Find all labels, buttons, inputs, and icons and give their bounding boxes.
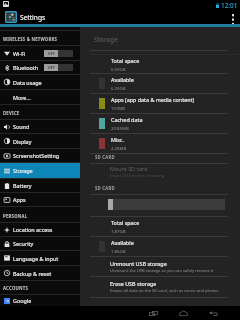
staticText: DEVICE bbox=[3, 110, 20, 116]
staticText: Data usage bbox=[13, 79, 42, 86]
staticText: PERSONAL bbox=[3, 213, 28, 219]
staticText: Battery bbox=[13, 182, 32, 189]
button[interactable]: Total space bbox=[80, 55, 240, 73]
staticText: Available bbox=[111, 76, 134, 83]
staticText: Language & input bbox=[13, 255, 59, 262]
button[interactable]: Total space bbox=[80, 217, 240, 236]
staticText: Total space bbox=[111, 57, 140, 64]
button[interactable]: Wi-Fi bbox=[0, 46, 80, 60]
staticText: 4.28MB bbox=[111, 145, 127, 151]
button[interactable]: Back bbox=[206, 306, 220, 320]
staticText: Insert SD Card for mounting bbox=[110, 173, 165, 179]
button[interactable]: Storage bbox=[0, 163, 80, 178]
staticText: Erases all data on the SD card, such as … bbox=[110, 288, 219, 294]
staticText: 6.59GB bbox=[111, 66, 126, 72]
staticText: Display bbox=[13, 138, 32, 145]
button[interactable]: Mount SD card bbox=[80, 164, 240, 180]
staticText: Erase USB storage bbox=[110, 280, 157, 287]
staticText: 20.85MB bbox=[111, 125, 129, 131]
button[interactable]: Apps bbox=[0, 193, 80, 206]
button[interactable]: Data usage bbox=[0, 75, 80, 89]
button[interactable]: Battery bbox=[0, 179, 80, 192]
button[interactable]: More options bbox=[226, 10, 240, 24]
button[interactable]: Home bbox=[176, 306, 190, 320]
button[interactable]: Misc. bbox=[80, 134, 240, 153]
staticText: Apps bbox=[13, 196, 26, 203]
button[interactable]: Available bbox=[80, 237, 240, 256]
staticText: 101MB bbox=[111, 105, 126, 111]
button[interactable]: OFF bbox=[44, 50, 73, 57]
button[interactable]: Recent apps bbox=[146, 306, 160, 320]
button[interactable]: Security bbox=[0, 237, 80, 250]
staticText: Backup & reset bbox=[13, 270, 52, 277]
button[interactable]: Apps (app data & media content) bbox=[80, 94, 240, 113]
staticText: 12:01 bbox=[221, 1, 238, 10]
staticText: SD CARD bbox=[95, 154, 115, 160]
staticText: Google bbox=[13, 297, 32, 304]
staticText: More... bbox=[13, 94, 31, 101]
staticText: Cached data bbox=[111, 116, 143, 123]
staticText: Available bbox=[111, 239, 134, 246]
staticText: Location access bbox=[13, 226, 53, 233]
staticText: SD CARD bbox=[95, 185, 115, 191]
button[interactable]: Backup & reset bbox=[0, 266, 80, 280]
button[interactable]: Display bbox=[0, 134, 80, 148]
button[interactable]: ScreenshotSetting bbox=[0, 149, 80, 162]
staticText: ScreenshotSetting bbox=[13, 152, 60, 159]
staticText: Wi-Fi bbox=[13, 50, 26, 57]
button[interactable]: More... bbox=[0, 90, 80, 104]
staticText: 1.86GB bbox=[111, 248, 126, 254]
staticText: OFF bbox=[48, 65, 55, 70]
staticText: Security bbox=[13, 240, 34, 247]
button[interactable]: Sound bbox=[0, 120, 80, 133]
button[interactable]: Location access bbox=[0, 223, 80, 236]
staticText: Sound bbox=[13, 123, 30, 130]
button[interactable]: Available bbox=[80, 74, 240, 93]
staticText: 6.29GB bbox=[111, 85, 126, 91]
staticText: Settings bbox=[20, 13, 46, 22]
button[interactable]: Erase USB storage bbox=[80, 277, 240, 297]
staticText: Storage bbox=[13, 167, 33, 174]
staticText: Unmount the USB storage so you can safel… bbox=[110, 268, 214, 274]
button[interactable]: Bluetooth bbox=[0, 61, 80, 74]
staticText: Mount SD card bbox=[110, 165, 148, 172]
staticText: 1.87GB bbox=[111, 228, 126, 234]
staticText: Storage bbox=[94, 35, 118, 43]
staticText: Bluetooth bbox=[13, 64, 39, 71]
staticText: OFF bbox=[48, 51, 55, 56]
staticText: Total space bbox=[111, 219, 140, 226]
staticText: WIRELESS & NETWORKS bbox=[3, 36, 58, 42]
staticText: Misc. bbox=[111, 136, 124, 143]
button[interactable]: Google bbox=[0, 295, 80, 306]
button[interactable]: Unmount USB storage bbox=[80, 257, 240, 276]
staticText: Apps (app data & media content) bbox=[111, 96, 195, 103]
staticText: Unmount USB storage bbox=[110, 260, 167, 267]
button[interactable]: Language & input bbox=[0, 251, 80, 265]
button[interactable]: Cached data bbox=[80, 114, 240, 133]
staticText: ACCOUNTS bbox=[3, 285, 28, 291]
button[interactable]: OFF bbox=[44, 64, 73, 71]
